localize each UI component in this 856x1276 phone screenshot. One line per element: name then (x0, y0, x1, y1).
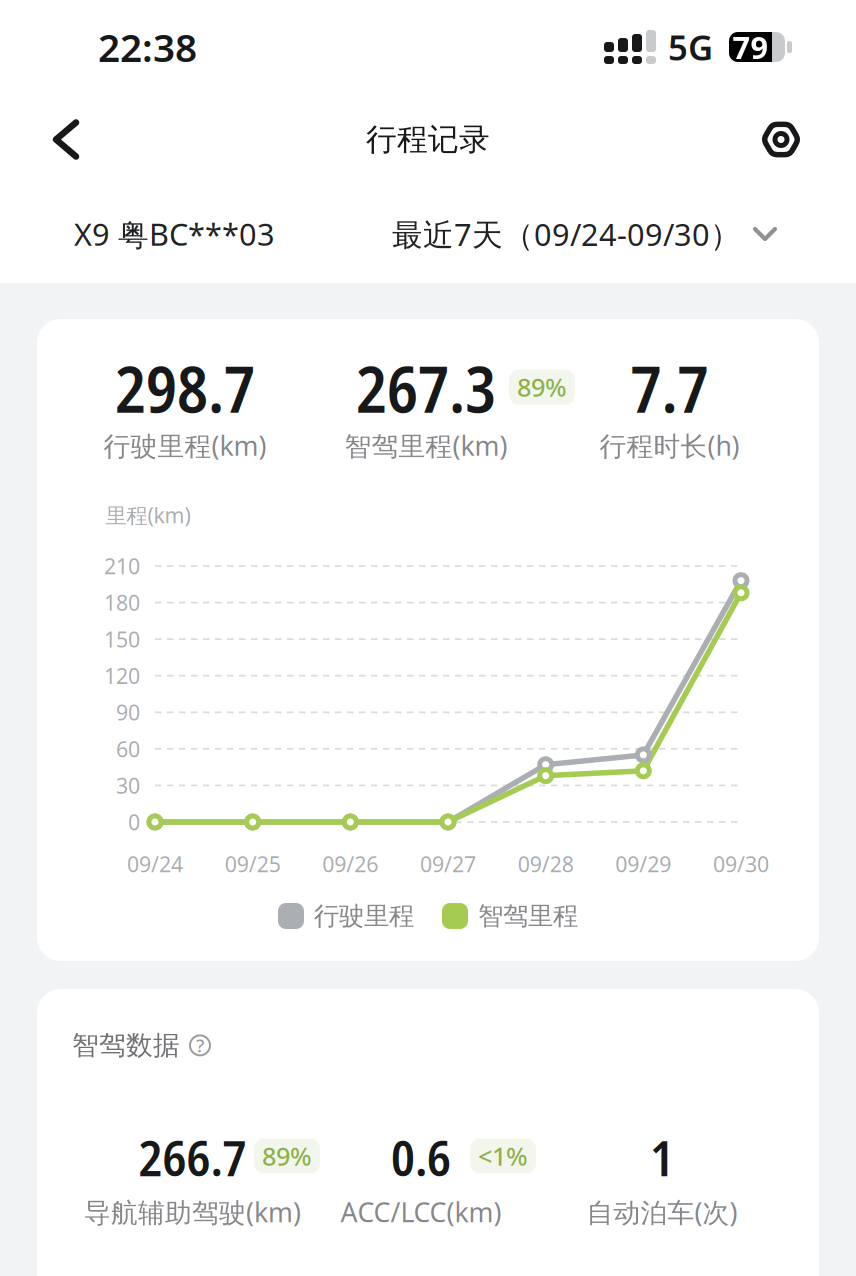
staticText: 30 (116, 771, 140, 800)
staticText: 智驾数据 (72, 1029, 180, 1062)
staticText: 09/24 (127, 850, 183, 878)
staticText: ? (196, 1033, 204, 1058)
staticText: 89% (517, 370, 567, 404)
staticText: 210 (104, 552, 140, 580)
staticText: 09/30 (713, 850, 769, 878)
staticText: 09/25 (225, 850, 281, 878)
staticText: 行程时长(h) (599, 428, 739, 463)
staticText: <1% (478, 1139, 528, 1173)
staticText: 180 (104, 588, 140, 617)
staticText: 09/28 (518, 850, 574, 878)
staticText: 1 (650, 1123, 674, 1191)
staticText: 267.3 (356, 344, 496, 432)
staticText: 行程记录 (366, 121, 490, 158)
button[interactable]: 最近7天（09/24-09/30） (392, 214, 777, 254)
staticText: 60 (116, 735, 140, 763)
staticText: 0.6 (391, 1123, 451, 1191)
staticText: X9 粤BC***03 (74, 214, 275, 254)
staticText: 09/27 (420, 850, 476, 878)
staticText: 150 (104, 625, 140, 653)
button[interactable]: Help (189, 1033, 211, 1058)
button[interactable]: X9 粤BC***03 (74, 214, 275, 254)
staticText: 120 (104, 661, 140, 690)
staticText: 298.7 (115, 344, 255, 432)
staticText: 最近7天（09/24-09/30） (392, 214, 741, 254)
staticText: 22:38 (98, 21, 197, 73)
staticText: 智驾里程(km) (344, 428, 507, 463)
staticText: 09/29 (615, 850, 671, 878)
staticText: 行驶里程(km) (103, 428, 266, 463)
staticText: 09/26 (322, 850, 378, 878)
staticText: 智驾里程 (478, 900, 578, 931)
staticText: 7.7 (630, 344, 708, 432)
button[interactable]: Back (0, 118, 100, 160)
staticText: 5G (668, 24, 713, 70)
staticText: ACC/LCC(km) (340, 1194, 501, 1230)
staticText: 90 (116, 698, 140, 726)
staticText: 0 (128, 808, 140, 836)
staticText: 自动泊车(次) (586, 1194, 737, 1230)
staticText: 266.7 (138, 1123, 246, 1191)
staticText: 行驶里程 (314, 900, 414, 931)
staticText: 导航辅助驾驶(km) (84, 1194, 301, 1230)
staticText: 89% (262, 1139, 312, 1173)
staticText: 里程(km) (105, 501, 190, 529)
button[interactable]: Settings (740, 119, 856, 159)
staticText: 79 (732, 27, 768, 67)
